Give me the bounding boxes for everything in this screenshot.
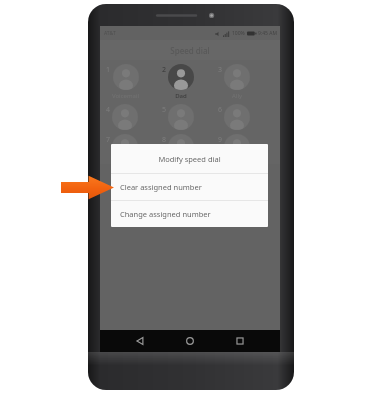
button[interactable]: Back: [130, 331, 150, 351]
staticText: 6: [218, 105, 223, 115]
staticText: AT&T: [104, 30, 116, 37]
button[interactable]: Recent apps: [230, 331, 250, 351]
staticText: 100%: [232, 30, 245, 37]
button[interactable]: 2: [162, 64, 218, 100]
staticText: 2: [162, 65, 167, 75]
button[interactable]: 3: [218, 64, 274, 100]
button[interactable]: Clear assigned number: [111, 174, 268, 200]
button[interactable]: Home: [180, 331, 200, 351]
staticText: 1: [106, 65, 111, 75]
staticText: Ally: [232, 92, 242, 100]
staticText: 9: [218, 135, 223, 145]
staticText: 7: [106, 135, 111, 145]
staticText: Dad: [175, 92, 187, 100]
staticText: 9:45 AM: [258, 30, 277, 37]
staticText: 3: [218, 65, 223, 75]
staticText: Modify speed dial: [158, 154, 221, 164]
button[interactable]: 7: [106, 134, 162, 160]
button[interactable]: 1: [106, 64, 162, 100]
staticText: Change assigned number: [120, 209, 211, 219]
staticText: Clear assigned number: [120, 182, 202, 192]
staticText: Speed dial: [170, 45, 210, 56]
button[interactable]: 9: [218, 134, 274, 160]
button[interactable]: 6: [218, 104, 274, 130]
button[interactable]: 8: [162, 134, 218, 160]
staticText: 8: [162, 135, 167, 145]
staticText: 4: [106, 105, 111, 115]
button[interactable]: 4: [106, 104, 162, 130]
button[interactable]: Change assigned number: [111, 201, 268, 227]
staticText: 5: [162, 105, 167, 115]
button[interactable]: 5: [162, 104, 218, 130]
